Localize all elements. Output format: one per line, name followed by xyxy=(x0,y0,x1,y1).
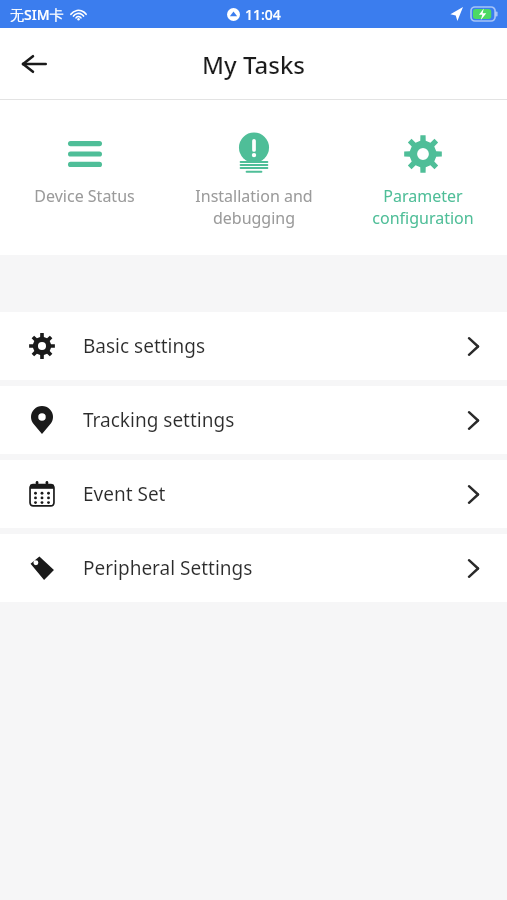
button[interactable]: Tracking settings xyxy=(0,386,507,454)
staticText: My Tasks xyxy=(202,48,305,81)
staticText: 11:04 xyxy=(245,5,281,24)
staticText: Device Status xyxy=(34,185,135,207)
staticText: Installation and debugging xyxy=(195,185,313,229)
button[interactable]: Parameter configuration xyxy=(338,100,507,229)
button[interactable]: Device Status xyxy=(0,100,169,207)
staticText: Parameter configuration xyxy=(372,185,474,229)
staticText: Peripheral Settings xyxy=(83,555,468,581)
button[interactable]: Back xyxy=(10,40,58,88)
button[interactable]: Peripheral Settings xyxy=(0,534,507,602)
staticText: Tracking settings xyxy=(83,407,468,433)
button[interactable]: Installation and debugging xyxy=(169,100,338,229)
button[interactable]: Event Set xyxy=(0,460,507,528)
staticText: Event Set xyxy=(83,481,468,507)
staticText: 无SIM卡 xyxy=(10,5,64,24)
staticText: Basic settings xyxy=(83,333,468,359)
button[interactable]: Basic settings xyxy=(0,312,507,380)
